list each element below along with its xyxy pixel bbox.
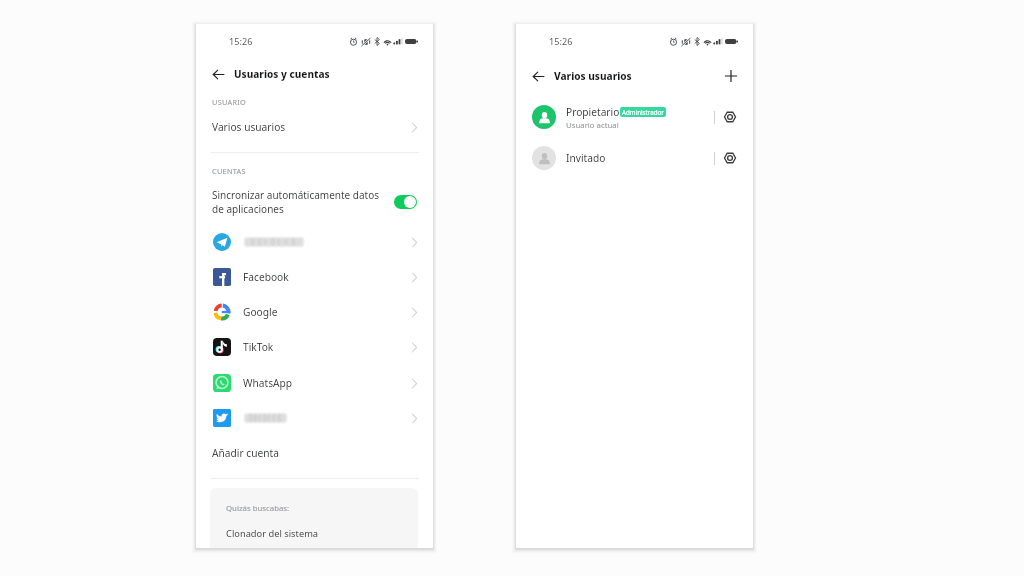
button[interactable]: Back	[532, 70, 545, 83]
button[interactable]: Owner settings	[724, 111, 736, 123]
button[interactable]: Guest settings	[724, 152, 736, 164]
button[interactable]	[196, 404, 433, 432]
button[interactable]	[196, 228, 433, 256]
button[interactable]: Invitado	[516, 140, 753, 176]
button[interactable]: Facebook	[196, 263, 433, 291]
staticText: Usuario actual	[566, 120, 619, 131]
button[interactable]: Propietario	[516, 99, 753, 135]
staticText: Sincronizar automáticamente datos de apl…	[212, 188, 384, 216]
button[interactable]: Add user	[723, 68, 739, 84]
staticText: Varios usuarios	[212, 120, 286, 134]
staticText: 15:26	[549, 35, 573, 48]
staticText: WhatsApp	[243, 376, 293, 390]
button[interactable]: Quizás buscabas:	[210, 488, 418, 548]
button[interactable]: Google	[196, 298, 433, 326]
staticText: Varios usuarios	[554, 69, 632, 83]
staticText: Quizás buscabas:	[226, 503, 290, 514]
button[interactable]: Back	[196, 61, 433, 87]
staticText: Usuarios y cuentas	[234, 67, 330, 81]
button[interactable]: Varios usuarios	[196, 114, 433, 140]
staticText: Facebook	[243, 270, 289, 284]
staticText: Propietario	[566, 105, 620, 119]
button[interactable]: TikTok	[196, 333, 433, 361]
button[interactable]: Añadir cuenta	[196, 440, 433, 466]
staticText: Clonador del sistema	[226, 527, 319, 540]
staticText: 15:26	[229, 35, 253, 48]
staticText: Invitado	[566, 151, 606, 165]
staticText: Añadir cuenta	[212, 446, 279, 460]
staticText: USUARIO	[212, 97, 247, 107]
staticText: Administrador	[622, 108, 664, 116]
button[interactable]: Sincronizar automáticamente datos de apl…	[196, 184, 433, 220]
button[interactable]: Back	[212, 68, 225, 81]
staticText: CUENTAS	[212, 166, 246, 176]
button[interactable]: Auto-sync toggle	[394, 195, 417, 209]
button[interactable]: WhatsApp	[196, 369, 433, 397]
staticText: Google	[243, 305, 278, 319]
staticText: TikTok	[243, 340, 274, 354]
